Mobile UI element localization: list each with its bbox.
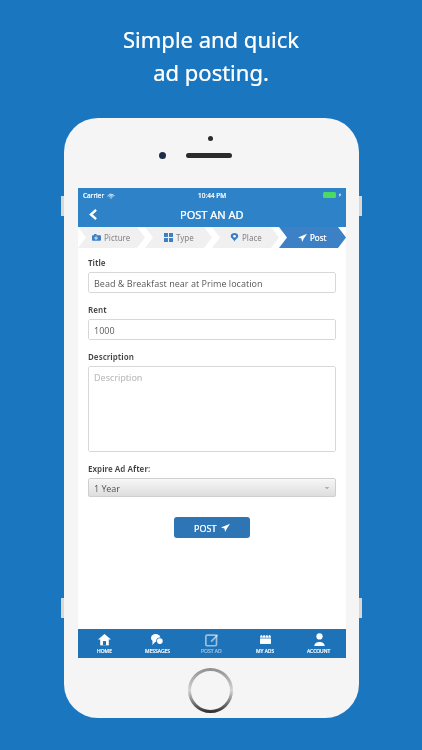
staticText: POST AD	[201, 648, 222, 655]
staticText: ACCOUNT	[307, 648, 331, 655]
staticText: Expire Ad After:	[88, 463, 151, 474]
staticText: Simple and quick	[123, 24, 299, 54]
staticText: Description	[88, 351, 134, 362]
button[interactable]: MESSAGES	[131, 629, 184, 658]
staticText: MESSAGES	[145, 648, 171, 655]
staticText: Type	[176, 232, 194, 243]
staticText: Rent	[88, 304, 107, 315]
button[interactable]: 1 Year	[88, 478, 336, 497]
staticText: Post	[310, 232, 327, 243]
button[interactable]: Description	[88, 366, 336, 452]
button[interactable]: 1000	[88, 319, 336, 340]
staticText: 1000	[94, 324, 115, 336]
staticText: ad posting.	[153, 57, 269, 87]
button[interactable]: POST AD	[184, 629, 238, 658]
button[interactable]: ACCOUNT	[292, 629, 346, 658]
button[interactable]: Post	[279, 227, 346, 248]
button[interactable]: Type	[145, 227, 212, 248]
button[interactable]: Bead & Breakfast near at Prime location	[88, 272, 336, 293]
staticText: POST AN AD	[180, 207, 244, 222]
staticText: Title	[88, 257, 106, 268]
button[interactable]: HOME	[78, 629, 131, 658]
button[interactable]: Back	[78, 202, 108, 227]
staticText: 1 Year	[94, 482, 120, 494]
staticText: MY ADS	[256, 648, 275, 655]
button[interactable]: Place	[212, 227, 279, 248]
button[interactable]: POST	[174, 517, 250, 538]
staticText: Description	[94, 371, 143, 383]
staticText: Bead & Breakfast near at Prime location	[94, 277, 263, 289]
button[interactable]: MY ADS	[238, 629, 292, 658]
staticText: Place	[242, 232, 262, 243]
button[interactable]: Picture	[78, 227, 145, 248]
staticText: POST	[194, 522, 217, 534]
staticText: 10:44 PM	[198, 191, 227, 200]
staticText: Picture	[104, 232, 131, 243]
staticText: Carrier	[83, 191, 105, 200]
staticText: HOME	[97, 648, 112, 655]
